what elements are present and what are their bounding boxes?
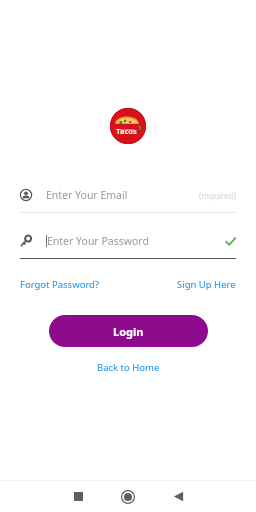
- staticText: (required): [199, 190, 236, 201]
- staticText: Back to Home: [97, 361, 160, 374]
- staticText: Forgot Password?: [20, 278, 100, 291]
- staticText: Tacos: [116, 126, 137, 136]
- button[interactable]: Back: [162, 481, 194, 512]
- button[interactable]: Forgot Password?: [20, 278, 100, 291]
- staticText: Enter Your Email: [46, 188, 128, 202]
- button[interactable]: Enter Your Password: [20, 228, 236, 259]
- button[interactable]: Home: [112, 481, 144, 512]
- button[interactable]: Login: [49, 315, 208, 347]
- button[interactable]: Enter Your Email: [20, 182, 236, 213]
- button[interactable]: Recent apps: [62, 481, 94, 512]
- button[interactable]: Sign Up Here: [177, 278, 236, 291]
- staticText: Enter Your Password: [47, 234, 149, 248]
- button[interactable]: Back to Home: [91, 359, 166, 376]
- staticText: Sign Up Here: [177, 278, 236, 291]
- staticText: Login: [113, 324, 144, 339]
